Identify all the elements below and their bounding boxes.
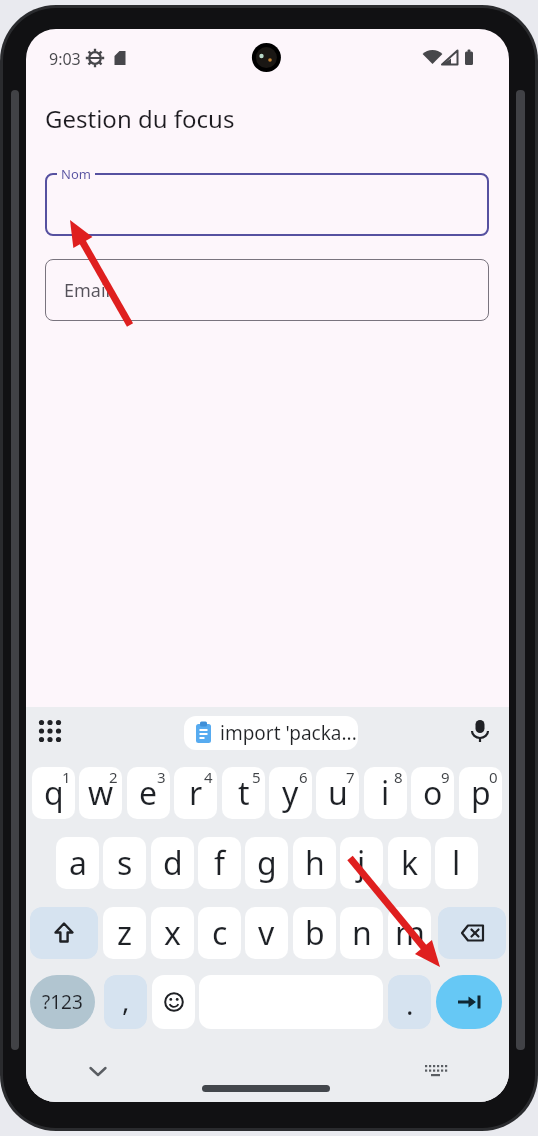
button[interactable]: ?123 <box>30 975 95 1029</box>
staticText: x <box>164 911 181 955</box>
button[interactable]: o <box>411 767 454 819</box>
button[interactable] <box>152 975 195 1029</box>
staticText: l <box>452 841 461 885</box>
button[interactable]: p <box>459 767 502 819</box>
staticText: v <box>258 911 275 955</box>
button[interactable]: u <box>316 767 359 819</box>
button[interactable] <box>464 715 496 747</box>
staticText: 1 <box>62 767 71 787</box>
staticText: 3 <box>157 767 166 787</box>
staticText: Email <box>64 278 111 303</box>
staticText: g <box>257 841 277 885</box>
staticText: h <box>305 841 325 885</box>
staticText: 6 <box>299 767 308 787</box>
staticText: k <box>401 841 419 885</box>
staticText: b <box>305 911 325 955</box>
staticText: i <box>381 771 390 815</box>
staticText: c <box>212 911 228 955</box>
staticText: t <box>238 771 250 815</box>
staticText: Gestion du focus <box>45 102 235 135</box>
staticText: import 'packa... <box>220 720 357 746</box>
staticText: u <box>328 771 348 815</box>
button[interactable] <box>438 907 506 959</box>
staticText: 7 <box>346 767 355 787</box>
staticText: s <box>117 841 133 885</box>
button[interactable]: n <box>340 907 383 959</box>
button[interactable] <box>30 907 98 959</box>
staticText: 5 <box>252 767 261 787</box>
button[interactable]: l <box>435 837 478 889</box>
staticText: y <box>282 771 299 815</box>
button[interactable] <box>34 715 66 747</box>
button[interactable]: j <box>340 837 383 889</box>
staticText: 0 <box>489 767 498 787</box>
button[interactable]: s <box>103 837 146 889</box>
button[interactable] <box>45 173 489 236</box>
button[interactable]: d <box>151 837 194 889</box>
button[interactable] <box>202 1085 330 1092</box>
staticText: . <box>406 985 414 1023</box>
button[interactable]: b <box>293 907 336 959</box>
button[interactable] <box>82 1057 114 1085</box>
button[interactable]: z <box>103 907 146 959</box>
staticText: 9:03 <box>49 48 81 70</box>
button[interactable] <box>436 975 502 1029</box>
staticText: f <box>214 841 226 885</box>
staticText: , <box>122 981 130 1019</box>
button[interactable]: e <box>127 767 170 819</box>
button[interactable]: f <box>198 837 241 889</box>
button[interactable]: y <box>269 767 312 819</box>
button[interactable]: a <box>56 837 99 889</box>
button[interactable]: g <box>245 837 288 889</box>
staticText: o <box>423 771 443 815</box>
staticText: j <box>357 841 366 885</box>
staticText: 4 <box>204 767 213 787</box>
button[interactable]: q <box>32 767 75 819</box>
staticText: Nom <box>61 165 91 183</box>
button[interactable]: Email <box>45 259 489 321</box>
button[interactable]: m <box>388 907 431 959</box>
staticText: n <box>352 911 372 955</box>
staticText: q <box>44 771 64 815</box>
staticText: r <box>189 771 203 815</box>
button[interactable]: x <box>151 907 194 959</box>
staticText: p <box>471 771 491 815</box>
staticText: m <box>395 911 425 955</box>
button[interactable] <box>420 1059 452 1087</box>
staticText: e <box>139 771 158 815</box>
button[interactable]: v <box>245 907 288 959</box>
button[interactable]: import 'packa... <box>184 716 358 750</box>
staticText: w <box>88 771 114 815</box>
button[interactable]: w <box>79 767 122 819</box>
button[interactable]: i <box>364 767 407 819</box>
button[interactable]: c <box>198 907 241 959</box>
staticText: z <box>117 911 133 955</box>
staticText: 8 <box>394 767 403 787</box>
button[interactable]: h <box>293 837 336 889</box>
button[interactable]: . <box>388 975 431 1029</box>
button[interactable]: k <box>388 837 431 889</box>
button[interactable]: t <box>222 767 265 819</box>
staticText: d <box>163 841 183 885</box>
button[interactable]: r <box>174 767 217 819</box>
staticText: 2 <box>109 767 118 787</box>
button[interactable]: , <box>104 975 147 1029</box>
staticText: 9 <box>441 767 450 787</box>
staticText: a <box>69 841 87 885</box>
staticText: ?123 <box>42 989 83 1015</box>
